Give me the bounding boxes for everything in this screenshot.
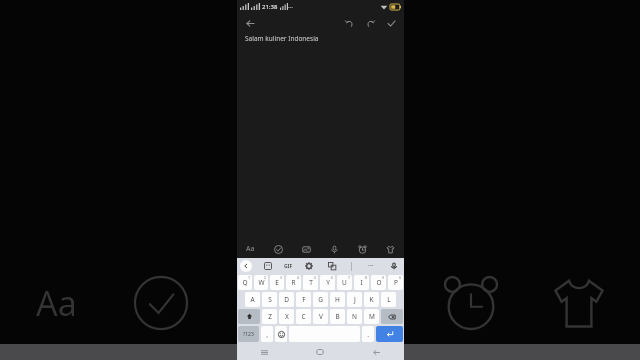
button[interactable]: Voice (320, 240, 348, 258)
staticText: ?123 (243, 331, 254, 338)
staticText: , (266, 330, 268, 339)
staticText: D (284, 295, 289, 304)
staticText: N (352, 312, 357, 321)
staticText: 8 (365, 275, 368, 280)
button[interactable]: L (381, 292, 396, 307)
button[interactable]: Image (292, 240, 320, 258)
staticText: H (335, 295, 340, 304)
staticText: M (369, 312, 375, 321)
button[interactable]: Voice input (388, 260, 400, 272)
button[interactable]: A (245, 292, 260, 307)
button[interactable]: Recents (237, 344, 292, 360)
staticText: L (387, 295, 391, 304)
button[interactable]: H (330, 292, 345, 307)
button[interactable]: Text format (237, 240, 264, 258)
button[interactable]: S (262, 292, 277, 307)
staticText: 1 (248, 275, 251, 280)
staticText: ··· (368, 261, 374, 271)
button[interactable]: Stickers (262, 260, 274, 272)
staticText: R (291, 278, 296, 287)
button[interactable]: C (296, 309, 311, 324)
button[interactable]: , (261, 326, 273, 342)
button[interactable]: Back (243, 16, 257, 30)
button[interactable]: E (270, 275, 284, 290)
button[interactable]: Undo (342, 16, 356, 30)
button[interactable]: Shift (238, 309, 260, 324)
button[interactable]: Checklist (264, 240, 292, 258)
button[interactable]: G (313, 292, 328, 307)
staticText: F (302, 295, 306, 304)
staticText: C (301, 312, 306, 321)
staticText: G (318, 295, 323, 304)
staticText: 0 (399, 275, 402, 280)
button[interactable]: N (347, 309, 362, 324)
button[interactable]: Home (292, 344, 348, 360)
button[interactable]: B (330, 309, 345, 324)
staticText: 4 (297, 275, 300, 280)
button[interactable]: U (337, 275, 352, 290)
button[interactable]: D (279, 292, 294, 307)
button[interactable]: GIF (284, 263, 293, 270)
button[interactable]: Enter (376, 326, 403, 342)
staticText: Y (326, 278, 330, 287)
staticText: B (335, 312, 340, 321)
button[interactable]: Redo (363, 16, 377, 30)
staticText: K (369, 295, 374, 304)
staticText: J (354, 295, 356, 304)
button[interactable]: Q (238, 275, 252, 290)
button[interactable]: . (362, 326, 374, 342)
button[interactable]: W (254, 275, 268, 290)
staticText: . (367, 330, 369, 339)
button[interactable]: Reminder (348, 240, 376, 258)
staticText: S (268, 295, 272, 304)
staticText: Aa (36, 280, 77, 326)
staticText: T (309, 278, 313, 287)
staticText: Q (242, 278, 248, 287)
staticText: ··· (288, 3, 293, 11)
button[interactable]: Done (384, 16, 398, 30)
button[interactable]: K (364, 292, 379, 307)
button[interactable]: More (365, 260, 377, 272)
button[interactable]: J (347, 292, 362, 307)
button[interactable]: M (364, 309, 379, 324)
staticText: 2 (264, 275, 267, 280)
staticText: Salam kuliner Indonesia (245, 34, 319, 43)
button[interactable]: Settings (303, 260, 315, 272)
staticText: Aa (246, 244, 255, 254)
staticText: 5 (314, 275, 317, 280)
staticText: P (394, 278, 398, 287)
button[interactable]: R (286, 275, 301, 290)
staticText: W (258, 278, 265, 287)
button[interactable]: Symbols (238, 326, 259, 342)
button[interactable]: F (296, 292, 311, 307)
staticText: O (376, 278, 382, 287)
staticText: X (285, 312, 289, 321)
button[interactable]: Back (348, 344, 404, 360)
button[interactable]: Translate (326, 260, 338, 272)
staticText: 7 (348, 275, 351, 280)
button[interactable]: T (303, 275, 318, 290)
staticText: U (342, 278, 347, 287)
button[interactable]: P (388, 275, 403, 290)
staticText: I (360, 278, 363, 287)
staticText: 3 (280, 275, 283, 280)
button[interactable]: Expand (240, 260, 252, 272)
staticText: GIF (284, 263, 293, 270)
staticText: V (319, 312, 323, 321)
button[interactable]: Z (262, 309, 277, 324)
button[interactable]: V (313, 309, 328, 324)
button[interactable]: Emoji (275, 326, 287, 342)
button[interactable]: Theme (376, 240, 404, 258)
button[interactable]: X (279, 309, 294, 324)
staticText: 6 (331, 275, 334, 280)
button[interactable]: O (371, 275, 386, 290)
staticText: 21:38 (262, 3, 278, 11)
button[interactable]: I (354, 275, 369, 290)
staticText: 9 (382, 275, 385, 280)
staticText: E (275, 278, 279, 287)
staticText: Z (268, 312, 272, 321)
button[interactable]: Y (320, 275, 335, 290)
staticText: A (250, 295, 255, 304)
button[interactable]: Backspace (381, 309, 403, 324)
